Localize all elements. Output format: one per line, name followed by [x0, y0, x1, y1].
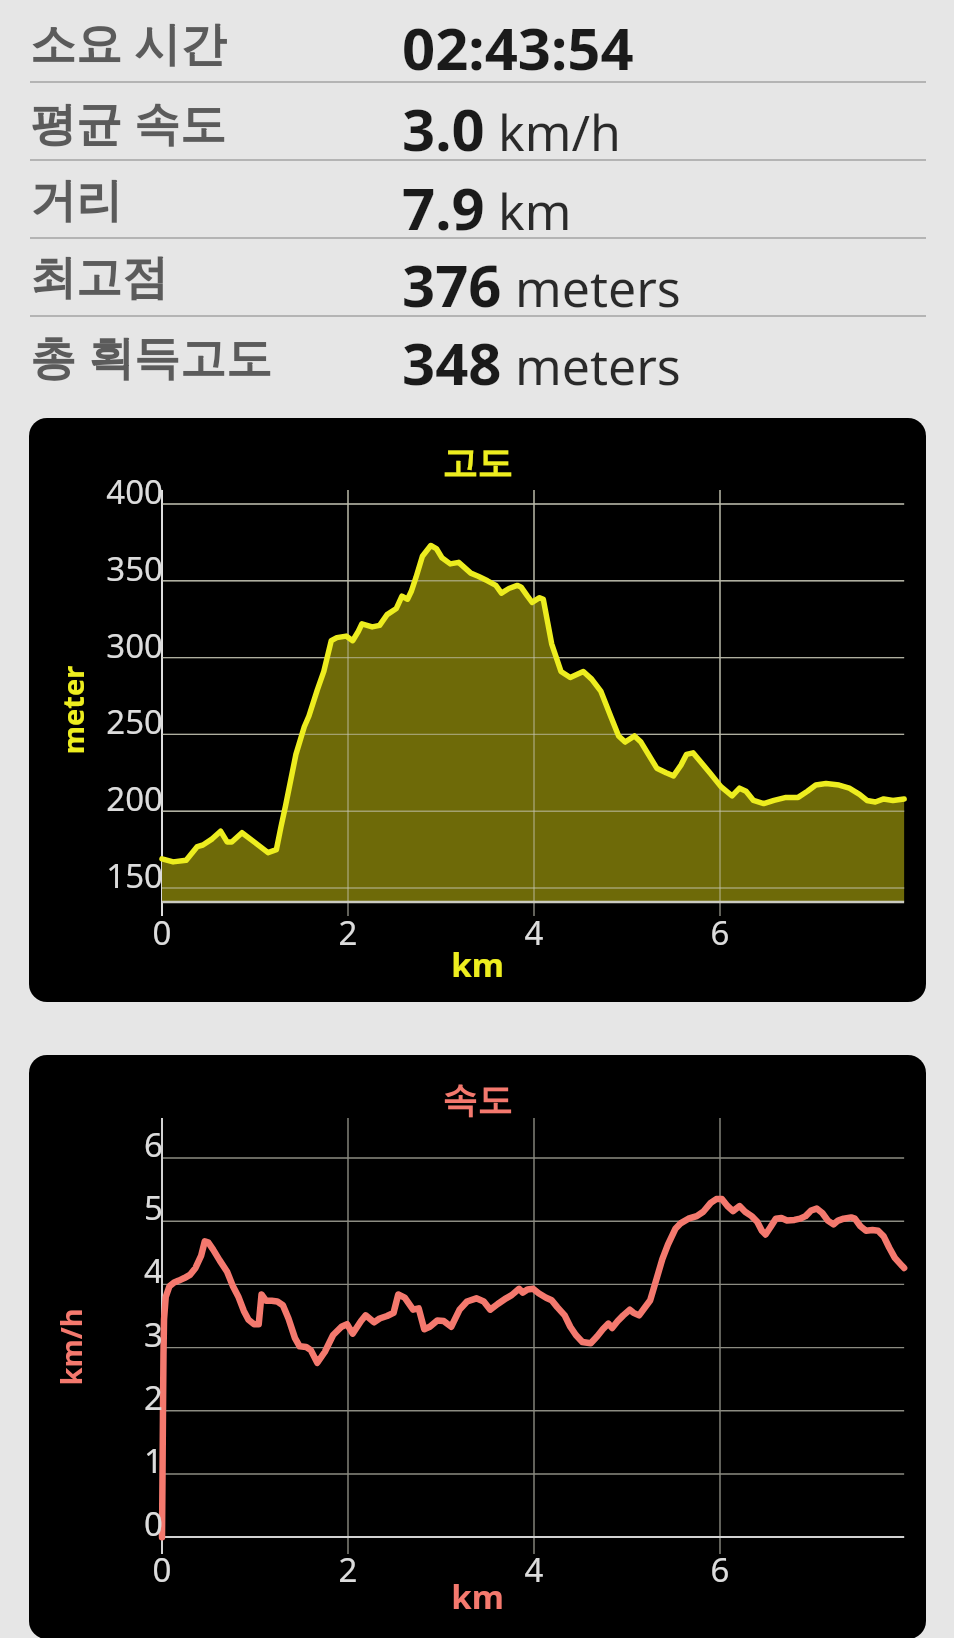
button[interactable]: 거리	[0, 160, 954, 237]
staticText: 6	[680, 910, 760, 955]
staticText: meters	[502, 254, 681, 322]
staticText: 2	[29, 1375, 163, 1420]
staticText: 3	[29, 1312, 163, 1357]
staticText: 150	[29, 853, 163, 898]
staticText: km/h	[485, 98, 621, 166]
staticText: 고도	[29, 441, 926, 485]
staticText: 200	[29, 776, 163, 821]
staticText: 평균 속도	[30, 91, 226, 154]
staticText: 0	[122, 910, 202, 955]
staticText: 총 획득고도	[30, 325, 272, 388]
staticText: meters	[502, 332, 681, 400]
button[interactable]: 소요 시간	[0, 0, 954, 81]
staticText: 속도	[29, 1078, 926, 1122]
staticText: 350	[29, 546, 163, 591]
staticText: km	[485, 177, 572, 245]
staticText: 7.9	[402, 168, 485, 245]
staticText: 4	[494, 910, 574, 955]
staticText: 02:43:54	[402, 8, 634, 87]
staticText: 0	[29, 1501, 163, 1546]
staticText: 250	[29, 699, 163, 744]
staticText: 2	[308, 1547, 388, 1592]
staticText: 거리	[30, 172, 122, 230]
staticText: 0	[122, 1547, 202, 1592]
staticText: 348	[402, 323, 502, 402]
staticText: 376	[402, 245, 502, 323]
staticText: 6	[680, 1547, 760, 1592]
button[interactable]: 총 획득고도	[0, 315, 954, 394]
staticText: km	[29, 942, 926, 987]
staticText: 소요 시간	[30, 11, 226, 74]
staticText: 1	[29, 1438, 163, 1483]
staticText: 4	[29, 1248, 163, 1293]
staticText: km/h	[51, 1262, 90, 1432]
staticText: 300	[29, 623, 163, 668]
staticText: 3.0	[402, 89, 485, 168]
staticText: 2	[308, 910, 388, 955]
button[interactable]: 최고점	[0, 237, 954, 315]
staticText: 6	[29, 1122, 163, 1167]
staticText: 400	[29, 469, 163, 514]
staticText: meter	[53, 625, 92, 795]
staticText: 5	[29, 1185, 163, 1230]
staticText: km	[29, 1574, 926, 1619]
button[interactable]: 평균 속도	[0, 81, 954, 160]
staticText: 4	[494, 1547, 574, 1592]
staticText: 최고점	[30, 249, 168, 307]
